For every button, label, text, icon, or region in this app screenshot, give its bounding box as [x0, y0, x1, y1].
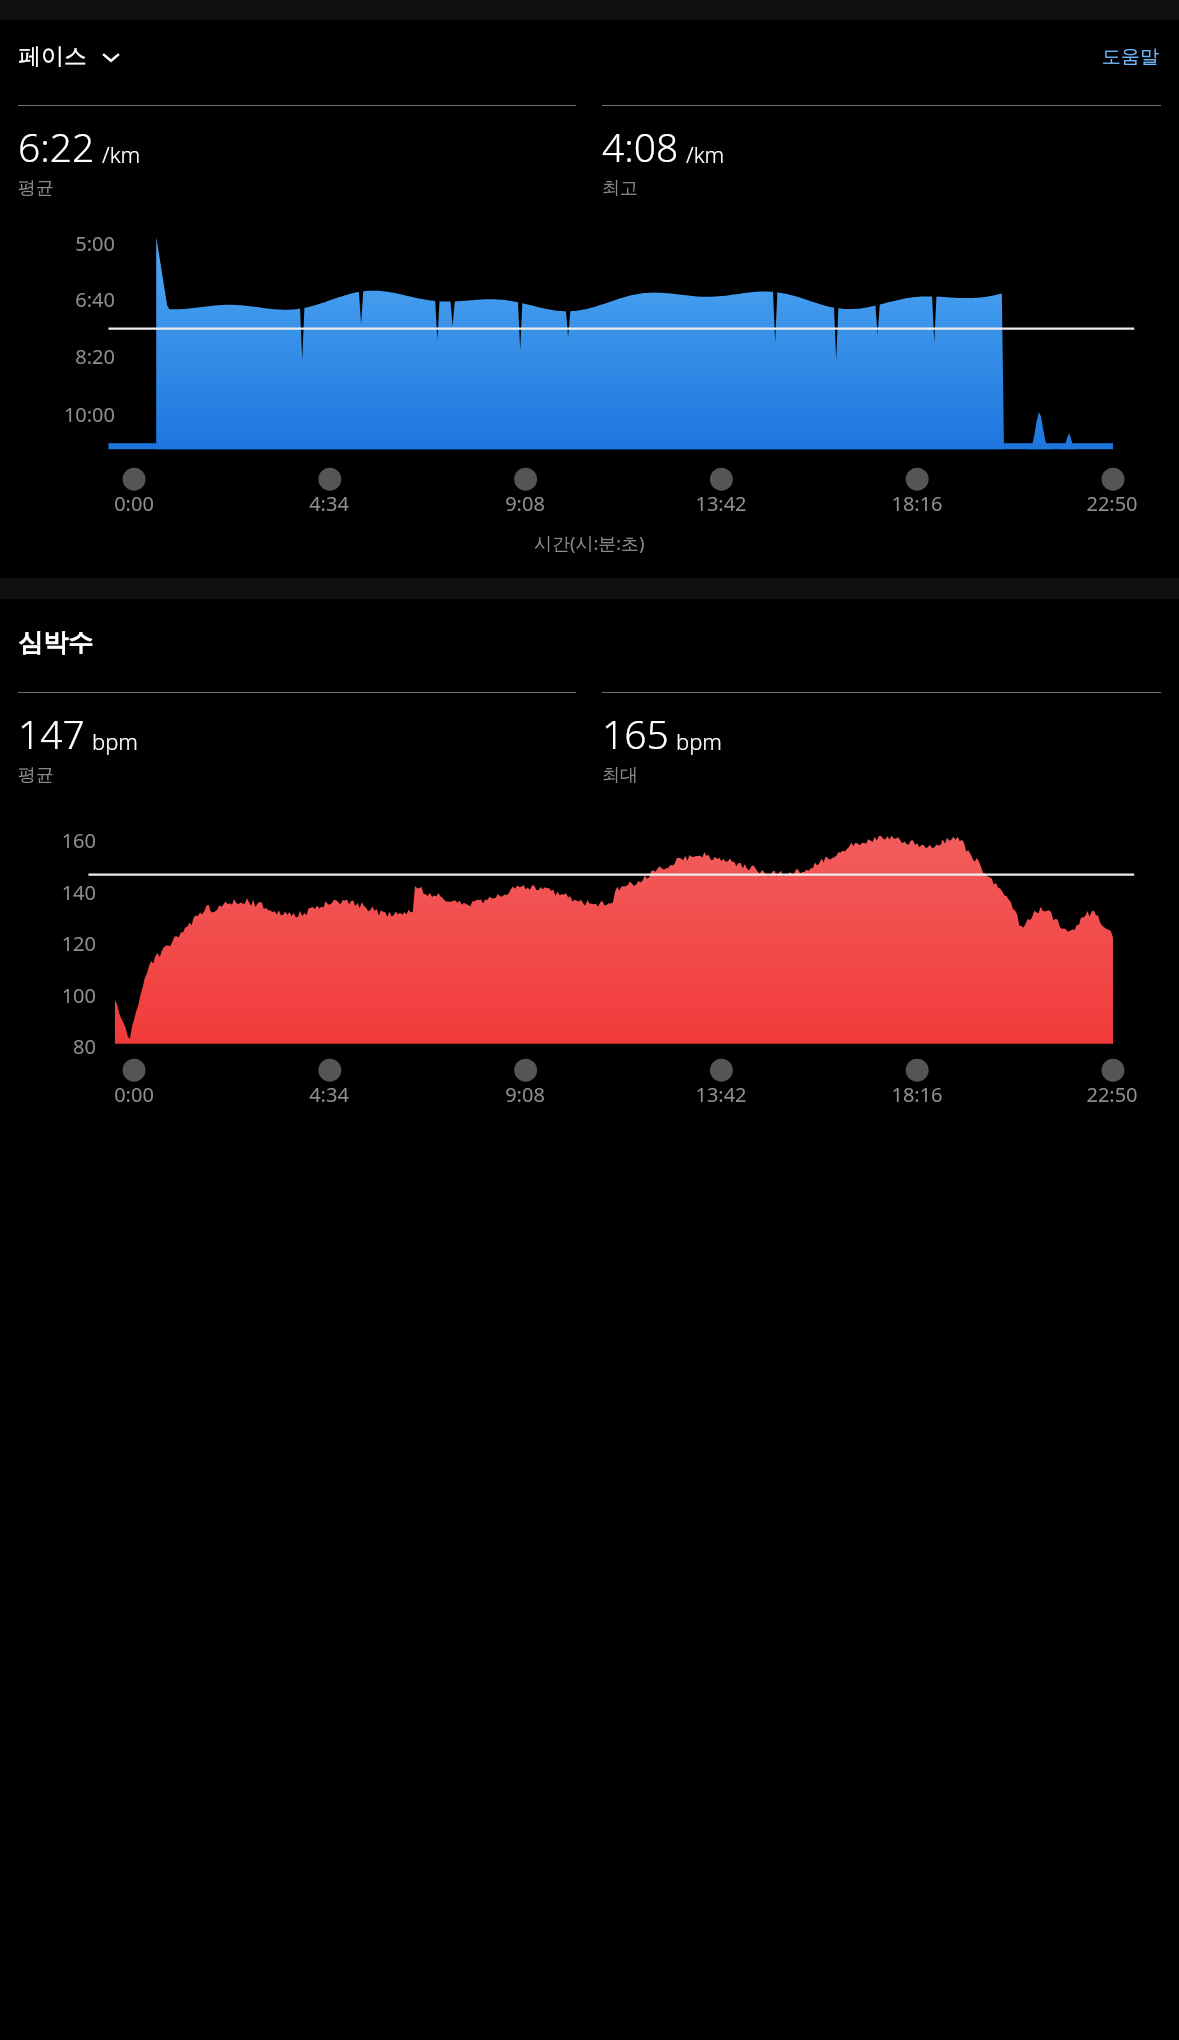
button[interactable]: 147 [18, 692, 576, 787]
staticText: 120 [61, 930, 96, 957]
button[interactable]: 심박수 [0, 625, 1179, 660]
staticText: 22:50 [1086, 490, 1138, 517]
staticText: 도움말 [1102, 45, 1159, 69]
staticText: 147 [18, 707, 85, 760]
staticText: 9:08 [505, 1081, 545, 1108]
staticText: 140 [61, 879, 96, 906]
staticText: 페이스 [18, 42, 87, 71]
staticText: 4:08 [602, 120, 679, 173]
staticText: 18:16 [891, 1081, 943, 1108]
staticText: 18:16 [891, 490, 943, 517]
staticText: 13:42 [695, 490, 747, 517]
staticText: 6:40 [75, 286, 115, 313]
staticText: 4:34 [309, 490, 349, 517]
staticText: 시간(시:분:초) [534, 531, 645, 556]
staticText: 4:34 [309, 1081, 349, 1108]
staticText: bpm [676, 726, 723, 756]
staticText: /km [686, 139, 725, 169]
staticText: 8:20 [75, 343, 115, 370]
button[interactable]: 도움말 [1098, 37, 1163, 77]
staticText: 10:00 [63, 401, 115, 428]
staticText: 9:08 [505, 490, 545, 517]
staticText: 165 [602, 707, 669, 760]
staticText: 5:00 [75, 230, 115, 257]
staticText: 평균 [18, 764, 54, 787]
button[interactable]: 6:22 [18, 105, 576, 200]
staticText: 0:00 [114, 490, 154, 517]
staticText: 100 [61, 982, 96, 1009]
staticText: 22:50 [1086, 1081, 1138, 1108]
staticText: bpm [92, 726, 139, 756]
button[interactable]: 165 [602, 692, 1161, 787]
staticText: 160 [61, 827, 96, 854]
staticText: 80 [73, 1033, 96, 1060]
staticText: 평균 [18, 177, 54, 200]
button[interactable]: 4:08 [602, 105, 1161, 200]
staticText: 6:22 [18, 120, 95, 173]
staticText: 0:00 [114, 1081, 154, 1108]
staticText: 13:42 [695, 1081, 747, 1108]
staticText: /km [102, 139, 141, 169]
staticText: 최고 [602, 177, 638, 200]
staticText: 심박수 [18, 627, 93, 658]
button[interactable]: 페이스 [16, 36, 124, 77]
staticText: 최대 [602, 764, 638, 787]
other: Change metric [100, 46, 122, 68]
